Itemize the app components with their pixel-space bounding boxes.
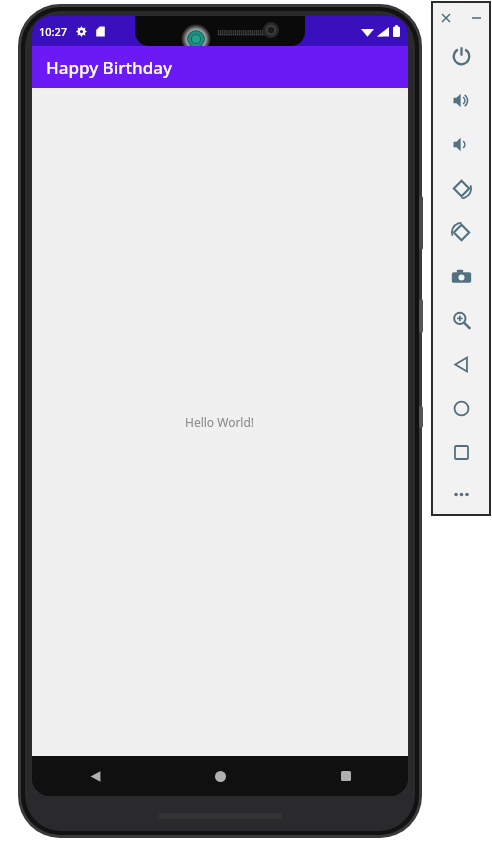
button[interactable]: Overview — [432, 430, 490, 474]
button[interactable]: Home — [432, 386, 490, 430]
button[interactable]: Home — [158, 756, 283, 796]
button[interactable]: More — [432, 474, 490, 515]
staticText: 10:27 — [39, 24, 68, 39]
button[interactable]: Recent apps — [283, 756, 408, 796]
button[interactable]: Back — [432, 342, 490, 386]
button[interactable]: Power — [432, 34, 490, 78]
button[interactable]: Volume up — [432, 78, 490, 122]
staticText: Hello World! — [185, 414, 255, 430]
button[interactable]: Minimize — [467, 9, 485, 27]
button[interactable]: Back — [32, 756, 158, 796]
button[interactable]: Volume down — [432, 122, 490, 166]
button[interactable]: Zoom — [432, 298, 490, 342]
button[interactable]: Rotate left — [432, 166, 490, 210]
button[interactable]: Happy Birthday — [32, 46, 408, 88]
button[interactable]: Close — [437, 9, 455, 27]
staticText: Happy Birthday — [46, 56, 172, 79]
button[interactable]: Rotate right — [432, 210, 490, 254]
button[interactable]: Take screenshot — [432, 254, 490, 298]
